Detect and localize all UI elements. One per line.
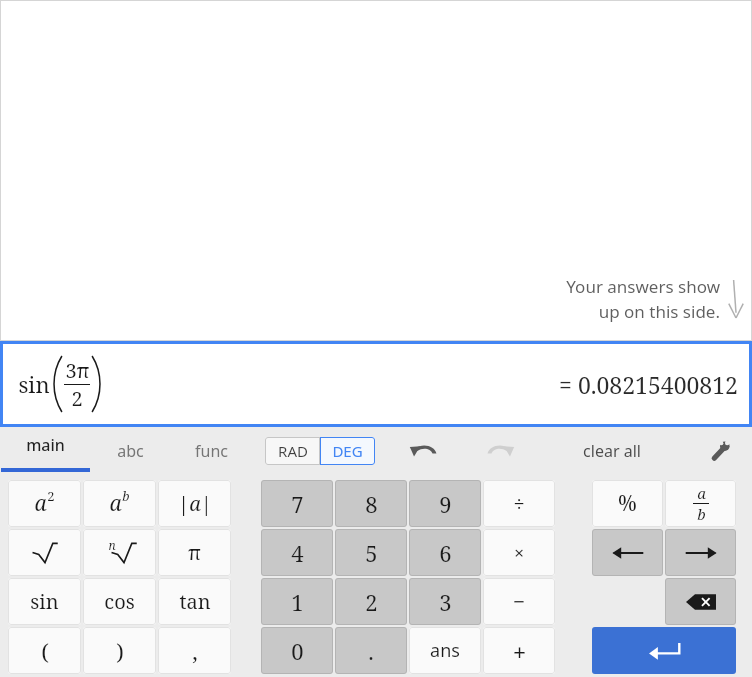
staticText: 9 [439,489,452,519]
button[interactable]: π [158,529,231,576]
staticText: 3 [439,587,452,617]
button[interactable]: ÷ [483,480,555,527]
staticText: sin [30,588,59,615]
staticText: 5 [365,538,378,568]
staticText: abc [117,440,144,462]
staticText: 2 [365,587,378,617]
staticText: up on this side. [598,300,720,323]
button[interactable]: 6 [409,529,481,576]
staticText: = 0.08215400812 [559,369,738,400]
staticText: 4 [291,538,304,568]
staticText: 1 [291,587,304,617]
staticText: 0 [291,636,304,666]
button[interactable]: a [665,480,736,527]
button[interactable]: ) [83,627,156,674]
button[interactable]: DEG [320,437,375,465]
button[interactable]: 5 [335,529,407,576]
button[interactable]: Undo [399,427,447,475]
button[interactable]: − [483,578,555,625]
button[interactable]: Move right [665,529,736,576]
staticText: % [618,489,637,518]
staticText: func [195,440,228,462]
staticText: π [188,539,201,566]
button[interactable]: . [335,627,407,674]
staticText: |a| [178,490,212,517]
staticText: , [192,636,198,666]
staticText: RAD [278,441,308,461]
button[interactable]: 1 [261,578,333,625]
button[interactable]: % [592,480,663,527]
button[interactable]: n [83,529,156,576]
button[interactable]: abc [90,427,171,475]
staticText: ) [116,636,124,666]
button[interactable]: Move left [592,529,663,576]
button[interactable]: func [171,427,252,475]
staticText: cos [104,588,135,615]
button[interactable]: ( [8,627,81,674]
staticText: ans [430,638,460,663]
button[interactable]: , [158,627,231,674]
staticText: DEG [332,441,363,461]
staticText: tan [179,588,211,615]
button[interactable]: 9 [409,480,481,527]
staticText: 2 [47,487,55,505]
button[interactable]: ans [409,627,481,674]
button[interactable] [8,529,81,576]
button[interactable]: 8 [335,480,407,527]
button[interactable]: sin [0,341,752,427]
button[interactable]: tan [158,578,231,625]
button[interactable]: Enter [592,627,736,674]
staticText: + [513,636,526,666]
staticText: ÷ [513,490,525,517]
staticText: × [514,541,524,564]
button[interactable]: × [483,529,555,576]
button[interactable]: main [0,427,90,475]
button[interactable]: a [8,480,81,527]
button[interactable]: 3 [409,578,481,625]
button[interactable]: 4 [261,529,333,576]
staticText: 2 [71,385,83,412]
button[interactable]: sin [8,578,81,625]
button[interactable]: RAD [265,437,320,465]
staticText: a [109,489,122,518]
staticText: a [697,483,706,503]
staticText: b [697,504,706,524]
button[interactable]: 2 [335,578,407,625]
button[interactable]: + [483,627,555,674]
button[interactable]: Settings [696,427,744,475]
staticText: 3π [65,357,90,384]
staticText: n [108,537,116,553]
staticText: main [26,434,65,456]
staticText: clear all [583,440,641,462]
button[interactable]: 7 [261,480,333,527]
staticText: − [513,588,525,615]
button[interactable]: 0 [261,627,333,674]
staticText: ( [41,636,49,666]
staticText: b [122,487,130,505]
button[interactable]: Redo [477,427,525,475]
staticText: 7 [291,489,304,519]
button[interactable]: Backspace [665,578,736,625]
staticText: . [368,636,374,666]
button[interactable]: cos [83,578,156,625]
button[interactable]: a [83,480,156,527]
staticText: a [34,489,47,518]
button[interactable]: |a| [158,480,231,527]
staticText: 6 [439,538,452,568]
staticText: sin [18,369,50,399]
staticText: 8 [365,489,378,519]
staticText: Your answers show [566,275,720,298]
button[interactable]: clear all [557,427,667,475]
